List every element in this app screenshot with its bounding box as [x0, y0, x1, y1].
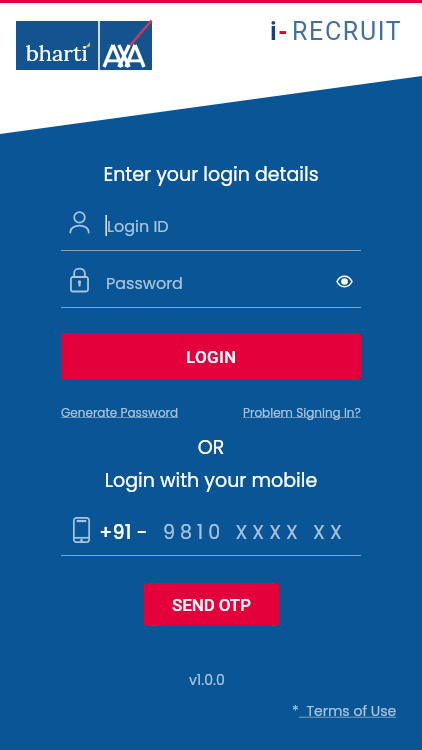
- staticText: Enter your login details: [0, 161, 422, 188]
- button[interactable]: Generate Password: [61, 404, 179, 421]
- staticText: v1.0.0: [189, 670, 225, 690]
- staticText: 9 8 1 0 X X X X X X: [163, 519, 342, 546]
- button[interactable]: LOGIN: [61, 333, 361, 380]
- staticText: OR: [0, 434, 422, 461]
- button[interactable]: Password: [61, 263, 361, 308]
- button[interactable]: Login ID: [61, 206, 361, 251]
- staticText: Login ID: [107, 215, 169, 237]
- staticText: SEND OTP: [172, 595, 251, 615]
- staticText: i: [270, 17, 277, 46]
- staticText: +91 -: [99, 519, 148, 546]
- staticText: -: [278, 17, 288, 46]
- staticText: bharti: [26, 39, 88, 67]
- staticText: *: [292, 701, 299, 721]
- button[interactable]: *: [292, 701, 397, 721]
- button[interactable]: SEND OTP: [144, 583, 279, 626]
- staticText: Terms of Use: [299, 701, 397, 721]
- staticText: Login with your mobile: [0, 467, 422, 494]
- button[interactable]: Show password: [332, 269, 356, 293]
- staticText: RECRUIT: [292, 17, 403, 46]
- button[interactable]: Problem Signing In?: [243, 404, 361, 421]
- staticText: Password: [106, 272, 183, 294]
- staticText: LOGIN: [186, 347, 237, 367]
- button[interactable]: +91 -: [61, 513, 361, 556]
